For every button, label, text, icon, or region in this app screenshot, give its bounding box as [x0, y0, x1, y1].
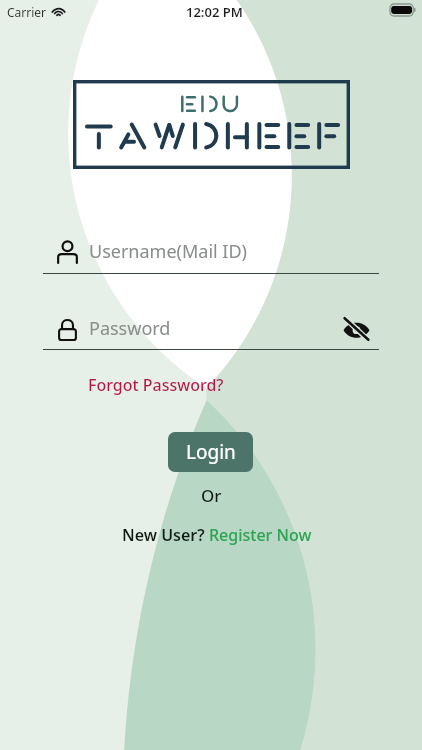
- staticText: Username(Mail ID): [89, 239, 248, 264]
- staticText: Login: [186, 439, 236, 465]
- button[interactable]: Forgot Password?: [88, 374, 224, 396]
- staticText: Carrier: [7, 4, 47, 20]
- button[interactable]: Toggle password visibility: [337, 311, 376, 347]
- staticText: Or: [201, 484, 222, 507]
- button[interactable]: Username(Mail ID): [43, 230, 379, 274]
- staticText: Password: [89, 316, 171, 341]
- button[interactable]: Register Now: [209, 524, 312, 546]
- staticText: New User?: [122, 524, 209, 546]
- button[interactable]: Password: [43, 306, 379, 350]
- staticText: 12:02 PM: [186, 3, 243, 21]
- staticText: Forgot Password?: [88, 374, 224, 396]
- button[interactable]: Login: [168, 432, 253, 472]
